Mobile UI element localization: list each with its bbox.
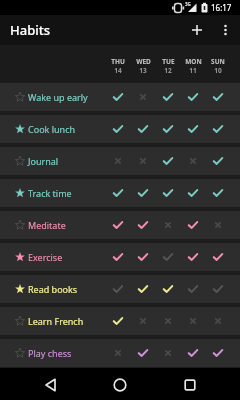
staticText: SUN <box>211 57 225 66</box>
button[interactable] <box>156 147 180 175</box>
staticText: 10 <box>214 66 222 75</box>
button[interactable] <box>106 307 130 335</box>
button[interactable] <box>131 275 155 303</box>
button[interactable] <box>156 275 180 303</box>
button[interactable]: Journal <box>0 147 105 175</box>
staticText: 11 <box>189 66 197 75</box>
staticText: Habits <box>10 21 51 39</box>
button[interactable]: Exercise <box>0 243 105 271</box>
button[interactable] <box>156 211 180 239</box>
button[interactable] <box>206 243 230 271</box>
button[interactable] <box>186 19 208 41</box>
button[interactable] <box>181 147 205 175</box>
button[interactable] <box>156 339 180 367</box>
button[interactable] <box>156 243 180 271</box>
button[interactable] <box>216 19 236 41</box>
button[interactable] <box>176 371 204 399</box>
staticText: 16:17 <box>211 2 232 13</box>
staticText: THU <box>111 57 125 66</box>
button[interactable] <box>106 179 130 207</box>
button[interactable] <box>36 371 64 399</box>
button[interactable] <box>181 275 205 303</box>
button[interactable] <box>181 243 205 271</box>
staticText: Cook lunch <box>28 123 76 135</box>
button[interactable]: Wake up early <box>0 83 105 111</box>
staticText: Learn French <box>28 315 84 327</box>
button[interactable] <box>181 83 205 111</box>
button[interactable] <box>106 147 130 175</box>
button[interactable] <box>131 243 155 271</box>
button[interactable] <box>206 115 230 143</box>
staticText: 14 <box>114 66 122 75</box>
staticText: MON <box>185 57 202 66</box>
button[interactable] <box>181 339 205 367</box>
button[interactable] <box>206 275 230 303</box>
button[interactable]: Meditate <box>0 211 105 239</box>
staticText: Journal <box>28 155 59 167</box>
button[interactable] <box>106 211 130 239</box>
button[interactable] <box>181 179 205 207</box>
button[interactable] <box>106 371 134 399</box>
button[interactable] <box>181 307 205 335</box>
staticText: 3G <box>185 1 191 7</box>
button[interactable] <box>106 275 130 303</box>
button[interactable] <box>206 211 230 239</box>
button[interactable] <box>181 115 205 143</box>
staticText: Read books <box>28 283 78 295</box>
button[interactable]: Cook lunch <box>0 115 105 143</box>
button[interactable]: Play chess <box>0 339 105 367</box>
button[interactable] <box>131 211 155 239</box>
button[interactable] <box>131 307 155 335</box>
button[interactable] <box>156 179 180 207</box>
staticText: 12 <box>164 66 172 75</box>
button[interactable] <box>206 339 230 367</box>
button[interactable] <box>206 307 230 335</box>
button[interactable] <box>181 211 205 239</box>
button[interactable]: Read books <box>0 275 105 303</box>
staticText: Meditate <box>28 219 66 231</box>
button[interactable]: Learn French <box>0 307 105 335</box>
staticText: Play chess <box>28 347 72 359</box>
button[interactable] <box>106 115 130 143</box>
button[interactable] <box>156 307 180 335</box>
button[interactable] <box>131 115 155 143</box>
staticText: WED <box>136 57 151 66</box>
button[interactable] <box>206 83 230 111</box>
button[interactable] <box>131 179 155 207</box>
staticText: Track time <box>28 187 72 199</box>
button[interactable] <box>131 83 155 111</box>
button[interactable] <box>156 83 180 111</box>
button[interactable] <box>106 339 130 367</box>
staticText: 13 <box>139 66 147 75</box>
staticText: TUE <box>162 57 175 66</box>
staticText: Wake up early <box>28 91 88 103</box>
button[interactable] <box>206 179 230 207</box>
button[interactable] <box>156 115 180 143</box>
button[interactable] <box>131 339 155 367</box>
staticText: Exercise <box>28 251 63 263</box>
button[interactable] <box>131 147 155 175</box>
button[interactable] <box>106 243 130 271</box>
button[interactable] <box>106 83 130 111</box>
button[interactable] <box>206 147 230 175</box>
button[interactable]: Track time <box>0 179 105 207</box>
